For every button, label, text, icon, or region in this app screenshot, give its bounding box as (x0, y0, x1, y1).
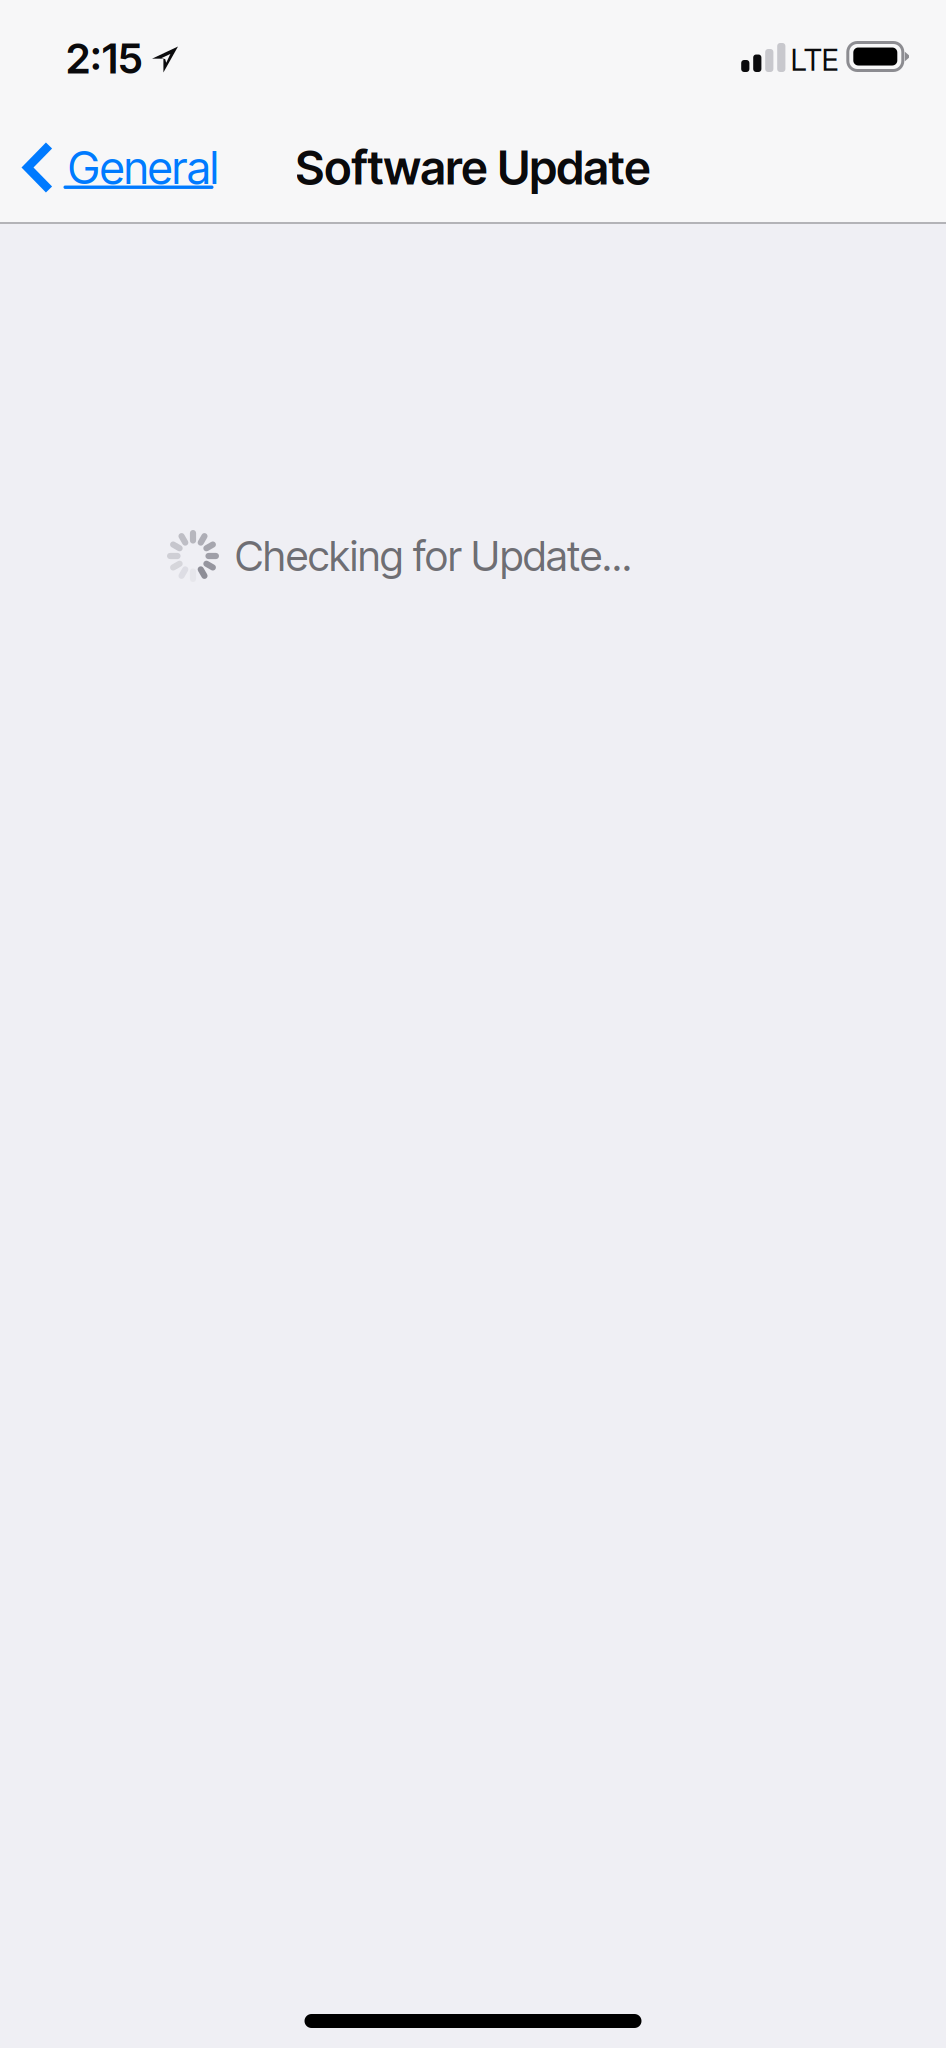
button[interactable]: Back to General (0, 128, 233, 207)
staticText: 2:15 (66, 33, 143, 83)
staticText: Software Update (295, 139, 650, 196)
staticText: LTE (791, 41, 839, 78)
staticText: Checking for Update... (235, 531, 632, 581)
staticText: General (68, 140, 219, 195)
